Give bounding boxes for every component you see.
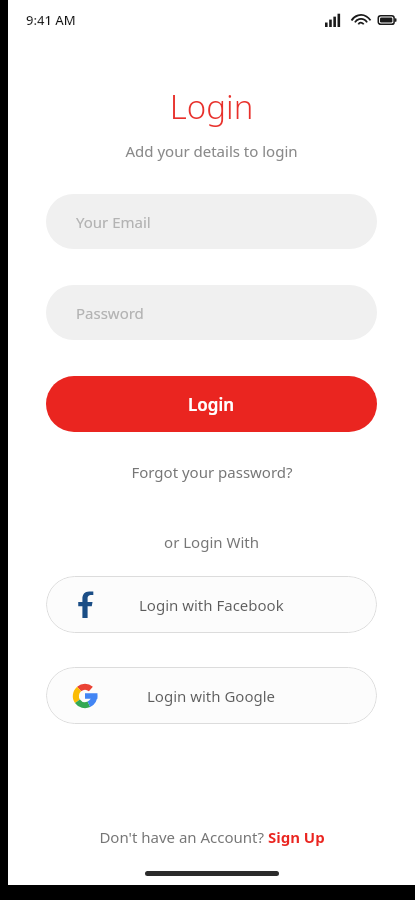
staticText: Forgot your password? xyxy=(131,462,293,482)
button[interactable]: Password xyxy=(46,285,377,340)
staticText: Your Email xyxy=(76,212,151,232)
staticText: Password xyxy=(76,303,144,323)
staticText: Login xyxy=(188,393,235,416)
staticText: or Login With xyxy=(8,532,415,552)
button[interactable]: Login with Facebook xyxy=(46,576,377,633)
button[interactable]: Login with Google xyxy=(46,667,377,724)
button[interactable]: Don't have an Account? Sign Up xyxy=(8,827,415,847)
staticText: Login with Facebook xyxy=(139,595,284,615)
staticText: Add your details to login xyxy=(8,141,415,161)
button[interactable]: Forgot your password? xyxy=(8,456,415,488)
staticText: 9:41 AM xyxy=(26,11,76,29)
staticText: Login xyxy=(8,84,415,129)
button[interactable]: Login xyxy=(46,376,377,432)
staticText: Don't have an Account? Sign Up xyxy=(99,827,325,847)
staticText: Login with Google xyxy=(147,686,276,706)
button[interactable]: Your Email xyxy=(46,194,377,249)
